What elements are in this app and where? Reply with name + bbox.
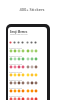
- button[interactable]: Sticker: [13, 97, 17, 100]
- button[interactable]: Sticker: [9, 57, 13, 61]
- button[interactable]: Sticker: [30, 49, 34, 53]
- button[interactable]: Sticker: [34, 89, 38, 93]
- button[interactable]: Sticker: [9, 73, 13, 77]
- button[interactable]: Sticker: [30, 89, 34, 93]
- button[interactable]: Sticker: [17, 89, 21, 93]
- button[interactable]: Sticker: [26, 73, 30, 77]
- button[interactable]: Sticker: [13, 57, 17, 61]
- button[interactable]: Sticker: [26, 97, 30, 100]
- button[interactable]: Sticker: [17, 49, 21, 53]
- button[interactable]: Sticker: [13, 49, 17, 53]
- button[interactable]: Sticker: [30, 81, 34, 85]
- button[interactable]: Sticker: [26, 81, 30, 85]
- button[interactable]: Sticker: [9, 97, 13, 100]
- button[interactable]: Sticker: [34, 97, 38, 100]
- button[interactable]: Sticker: [26, 41, 29, 44]
- staticText: Category name: [9, 55, 22, 57]
- button[interactable]: Sticker: [13, 89, 17, 93]
- button[interactable]: Sticker: [21, 89, 25, 93]
- button[interactable]: Sticker: [21, 81, 25, 85]
- button[interactable]: Sticker: [17, 41, 20, 44]
- staticText: Category name: [9, 79, 22, 81]
- button[interactable]: Sticker: [9, 65, 13, 69]
- button[interactable]: Sticker: [26, 49, 30, 53]
- button[interactable]: Sticker: [13, 65, 17, 69]
- button[interactable]: Sticker: [21, 73, 25, 77]
- button[interactable]: Sticker: [9, 49, 13, 53]
- staticText: 400+ Stickers: [0, 7, 64, 12]
- staticText: Sticker pack for you: [10, 33, 28, 36]
- button[interactable]: Sticker: [26, 57, 30, 61]
- button[interactable]: Sticker: [34, 81, 38, 85]
- button[interactable]: Sticker: [9, 89, 13, 93]
- button[interactable]: Sticker: [30, 73, 34, 77]
- button[interactable]: Sticker: [9, 41, 12, 44]
- button[interactable]: Sticker: [13, 41, 16, 44]
- button[interactable]: Sticker: [21, 97, 25, 100]
- button[interactable]: Sticker: [21, 65, 25, 69]
- button[interactable]: Sticker: [17, 57, 21, 61]
- staticText: Category name: [9, 71, 22, 73]
- button[interactable]: Sticker: [17, 97, 21, 100]
- button[interactable]: Sticker: [30, 97, 34, 100]
- button[interactable]: Sticker: [26, 89, 30, 93]
- button[interactable]: Sticker: [26, 65, 30, 69]
- button[interactable]: Sticker: [17, 65, 21, 69]
- button[interactable]: Sticker: [21, 41, 24, 44]
- staticText: Category name: [9, 87, 22, 89]
- button[interactable]: Sticker: [9, 81, 13, 85]
- button[interactable]: Sticker: [17, 81, 21, 85]
- button[interactable]: Sticker: [34, 73, 38, 77]
- button[interactable]: Sticker: [30, 41, 33, 44]
- button[interactable]: Sticker: [30, 57, 34, 61]
- button[interactable]: Sticker: [30, 65, 34, 69]
- button[interactable]: Sticker: [17, 73, 21, 77]
- button[interactable]: Sticker: [34, 49, 38, 53]
- button[interactable]: Sticker: [34, 65, 38, 69]
- staticText: Category name: [9, 95, 22, 97]
- button[interactable]: Sticker: [34, 57, 38, 61]
- button[interactable]: Sticker: [13, 81, 17, 85]
- button[interactable]: Sticker: [21, 49, 25, 53]
- button[interactable]: Emoji Memes: [10, 30, 28, 34]
- button[interactable]: Sticker: [21, 57, 25, 61]
- button[interactable]: Sticker: [34, 41, 37, 44]
- staticText: Category name: [9, 47, 22, 49]
- staticText: Category name: [9, 63, 22, 65]
- button[interactable]: Sticker: [13, 73, 17, 77]
